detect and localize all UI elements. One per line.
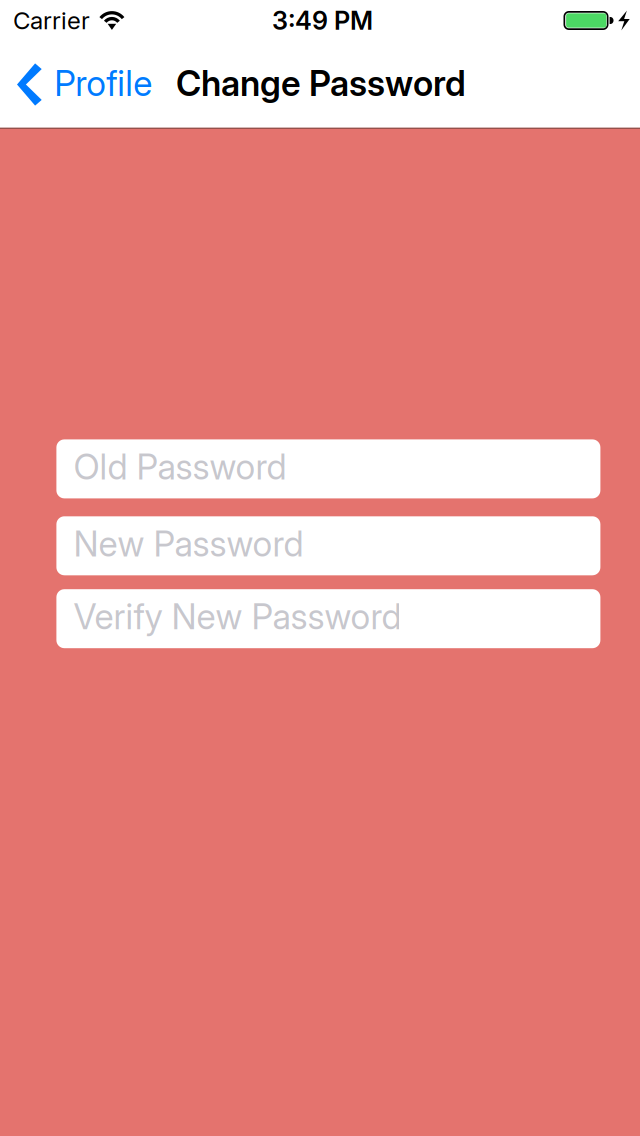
staticText: Carrier	[13, 6, 90, 35]
staticText: Change Password	[176, 62, 466, 104]
staticText: 3:49 PM	[272, 5, 373, 36]
staticText: Old Password	[73, 446, 286, 488]
staticText: New Password	[73, 523, 303, 565]
button[interactable]: Verify New Password	[56, 589, 600, 648]
button[interactable]: Profile	[0, 40, 164, 128]
staticText: Verify New Password	[73, 596, 401, 638]
button[interactable]: New Password	[56, 516, 600, 575]
button[interactable]: Old Password	[56, 439, 600, 498]
staticText: Profile	[54, 62, 152, 104]
